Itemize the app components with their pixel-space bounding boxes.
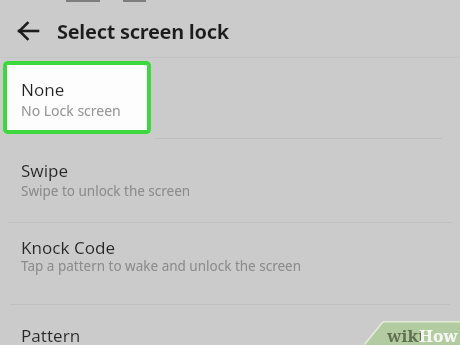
staticText: Knock Code bbox=[21, 236, 116, 259]
staticText: wiki bbox=[387, 324, 425, 345]
staticText: Pattern bbox=[21, 324, 81, 345]
button[interactable]: Knock Code bbox=[0, 224, 460, 304]
staticText: Select screen lock bbox=[57, 18, 229, 45]
staticText: No Lock screen bbox=[21, 101, 121, 120]
staticText: Tap a pattern to wake and unlock the scr… bbox=[21, 257, 302, 275]
staticText: Swipe to unlock the screen bbox=[21, 182, 191, 200]
button[interactable]: Pattern bbox=[0, 306, 460, 345]
staticText: How bbox=[419, 324, 458, 345]
button[interactable]: None bbox=[3, 61, 151, 134]
button[interactable] bbox=[14, 17, 42, 45]
staticText: None bbox=[21, 78, 65, 101]
button[interactable]: Swipe bbox=[0, 140, 460, 222]
staticText: Swipe bbox=[21, 159, 69, 182]
